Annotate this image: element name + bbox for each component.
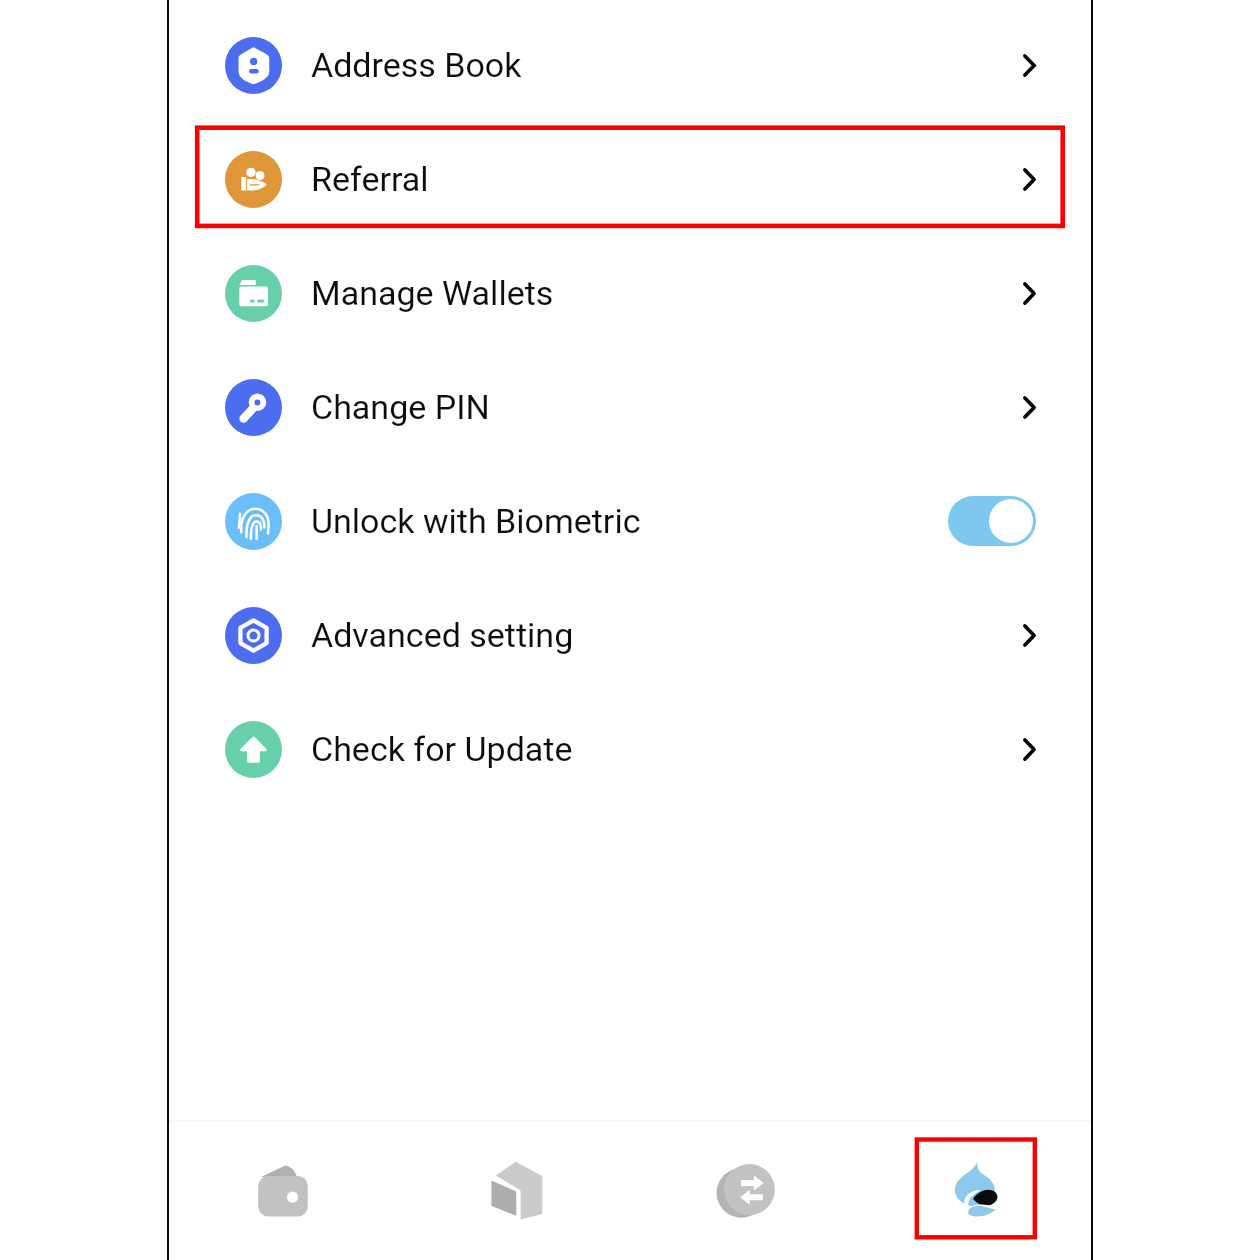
staticText: Check for Update [311,729,573,769]
button[interactable]: Address Book [167,8,1092,122]
button[interactable]: Advanced setting [167,578,1092,692]
button[interactable]: Unlock with Biometric [167,464,1092,578]
button[interactable]: Settings [861,1122,1092,1260]
staticText: Unlock with Biometric [311,501,641,541]
staticText: Change PIN [311,387,490,427]
button[interactable]: Toggle biometric unlock [948,496,1036,546]
button[interactable]: Assets [399,1122,630,1260]
button[interactable]: Referral [167,122,1092,236]
staticText: Referral [311,159,429,199]
staticText: Address Book [311,45,522,85]
button[interactable]: Manage Wallets [167,236,1092,350]
staticText: Manage Wallets [311,273,554,313]
button[interactable]: Wallet [167,1122,399,1260]
button[interactable]: Check for Update [167,692,1092,806]
button[interactable]: Swap [630,1122,861,1260]
staticText: Advanced setting [311,615,574,655]
button[interactable]: Change PIN [167,350,1092,464]
